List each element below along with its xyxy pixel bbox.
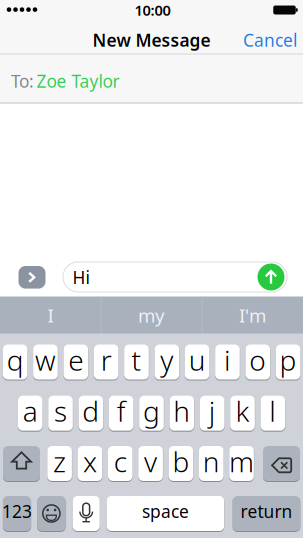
staticText: space	[142, 500, 189, 523]
button[interactable]: m	[229, 446, 254, 481]
button[interactable]: t	[124, 344, 149, 379]
staticText: d	[82, 392, 99, 430]
staticText: To:	[11, 69, 34, 92]
staticText: u	[189, 341, 206, 378]
staticText: f	[117, 392, 126, 430]
staticText: New Message	[92, 28, 210, 51]
button[interactable]: space	[107, 496, 224, 531]
staticText: n	[203, 443, 220, 480]
button[interactable]	[257, 263, 284, 290]
button[interactable]: return	[233, 496, 300, 531]
staticText: w	[35, 341, 56, 378]
button[interactable]: Cancel	[243, 28, 297, 51]
staticText: z	[53, 443, 66, 480]
button[interactable]	[3, 446, 40, 481]
button[interactable]: q	[3, 344, 27, 379]
staticText: g	[143, 392, 160, 430]
button[interactable]: y	[154, 344, 179, 379]
button[interactable]: h	[169, 396, 194, 431]
button[interactable]: z	[47, 446, 72, 481]
staticText: k	[235, 392, 249, 430]
button[interactable]: e	[63, 344, 88, 379]
button[interactable]: n	[199, 446, 223, 481]
button[interactable]: 123	[3, 496, 31, 531]
staticText: i	[224, 341, 231, 378]
button[interactable]: my	[101, 296, 201, 334]
button[interactable]: o	[245, 344, 270, 379]
staticText: h	[173, 392, 190, 430]
button[interactable]: f	[109, 396, 133, 431]
staticText: v	[144, 443, 157, 480]
button[interactable]: d	[79, 396, 103, 431]
button[interactable]: u	[185, 344, 209, 379]
staticText: o	[249, 341, 266, 378]
staticText: t	[131, 341, 141, 378]
staticText: b	[172, 443, 189, 480]
button[interactable]: Zoe Taylor	[36, 69, 119, 92]
button[interactable]: c	[108, 446, 133, 481]
button[interactable]: w	[33, 344, 58, 379]
button[interactable]: i	[215, 344, 240, 379]
button[interactable]: I'm	[202, 296, 302, 334]
staticText: x	[83, 443, 97, 480]
staticText: j	[209, 392, 216, 430]
staticText: q	[7, 341, 24, 378]
staticText: e	[68, 341, 83, 378]
button[interactable]: a	[18, 396, 42, 431]
button[interactable]: k	[230, 396, 255, 431]
staticText: m	[229, 443, 254, 480]
staticText: p	[280, 341, 297, 378]
button[interactable]	[18, 266, 45, 289]
button[interactable]: s	[48, 396, 73, 431]
staticText: Cancel	[243, 28, 297, 51]
staticText: Zoe Taylor	[36, 69, 119, 92]
button[interactable]	[63, 262, 287, 292]
staticText: return	[240, 500, 292, 523]
button[interactable]: l	[260, 396, 285, 431]
staticText: I'm	[239, 303, 266, 328]
staticText: 10:00	[134, 0, 170, 20]
button[interactable]: I	[0, 296, 100, 334]
staticText: c	[114, 443, 127, 480]
button[interactable]	[263, 446, 300, 481]
button[interactable]: v	[138, 446, 163, 481]
button[interactable]	[73, 496, 100, 531]
staticText: a	[23, 392, 38, 430]
button[interactable]: x	[78, 446, 102, 481]
staticText: s	[54, 392, 67, 430]
button[interactable]: g	[139, 396, 164, 431]
staticText: 123	[2, 500, 32, 523]
staticText: Hi	[72, 266, 89, 289]
staticText: y	[160, 341, 173, 378]
button[interactable]: b	[169, 446, 193, 481]
button[interactable]: r	[94, 344, 118, 379]
staticText: my	[138, 303, 165, 328]
button[interactable]	[37, 496, 66, 531]
button[interactable]: p	[276, 344, 300, 379]
staticText: l	[269, 392, 276, 430]
button[interactable]: j	[200, 396, 224, 431]
staticText: r	[101, 341, 112, 378]
staticText: I	[47, 303, 53, 328]
